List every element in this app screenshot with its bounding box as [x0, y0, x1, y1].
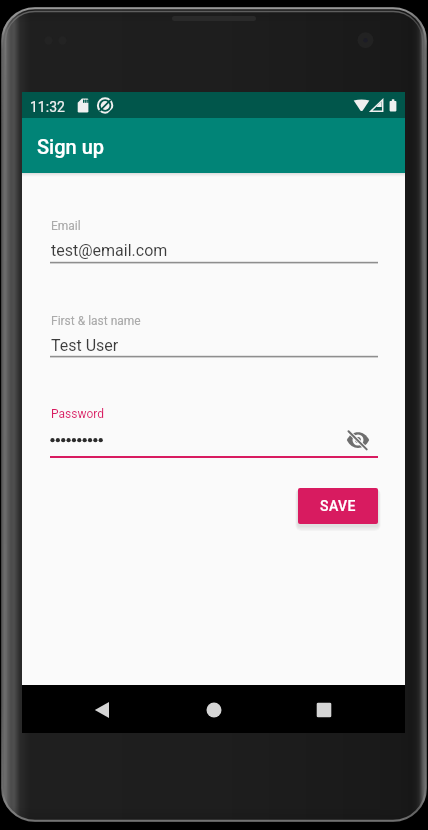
button[interactable]: First & last name [50, 309, 378, 362]
staticText: test@email.com [51, 241, 168, 260]
button[interactable]: Recent apps [304, 685, 344, 733]
button[interactable]: Show password [344, 426, 372, 454]
staticText: First & last name [51, 314, 141, 328]
staticText: 11:32 [30, 99, 65, 115]
staticText: Test User [51, 336, 119, 355]
button[interactable]: Password [50, 402, 378, 461]
staticText: SAVE [320, 498, 356, 514]
button[interactable]: SAVE [298, 488, 378, 524]
button[interactable]: Home [194, 685, 234, 733]
button[interactable]: Email [50, 214, 378, 268]
staticText: Password [51, 407, 105, 421]
staticText: Sign up [37, 135, 105, 158]
staticText: Email [51, 219, 81, 233]
button[interactable]: Back [82, 685, 122, 733]
